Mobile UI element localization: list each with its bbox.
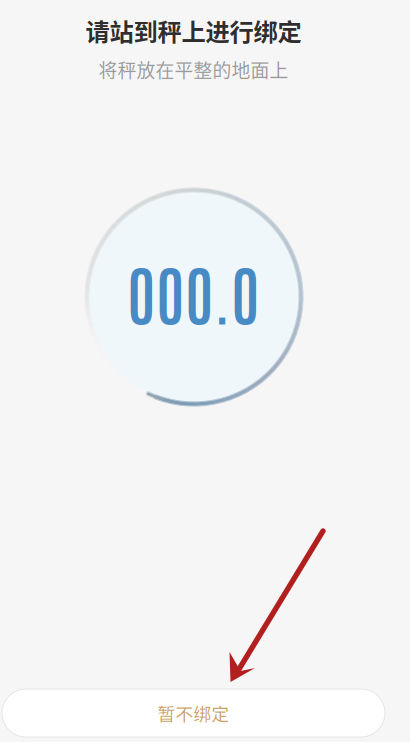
staticText: 000.0 — [127, 251, 260, 333]
staticText: 将秤放在平整的地面上 — [98, 56, 288, 83]
staticText: 暂不绑定 — [157, 700, 229, 726]
button[interactable]: 暂不绑定 — [2, 689, 385, 737]
staticText: 请站到秤上进行绑定 — [85, 13, 301, 48]
